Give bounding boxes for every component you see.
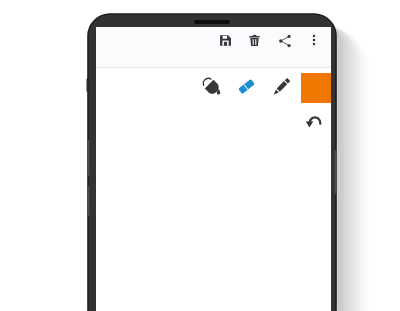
button[interactable]: Save: [219, 34, 232, 47]
button[interactable]: More options: [308, 34, 320, 46]
button[interactable]: Undo: [305, 111, 322, 128]
button[interactable]: Delete: [248, 34, 261, 47]
button[interactable]: Pen: [272, 77, 291, 96]
button[interactable]: Eraser: [237, 77, 256, 96]
button[interactable]: Share: [278, 34, 292, 48]
button[interactable]: Fill with colour: [202, 77, 221, 96]
